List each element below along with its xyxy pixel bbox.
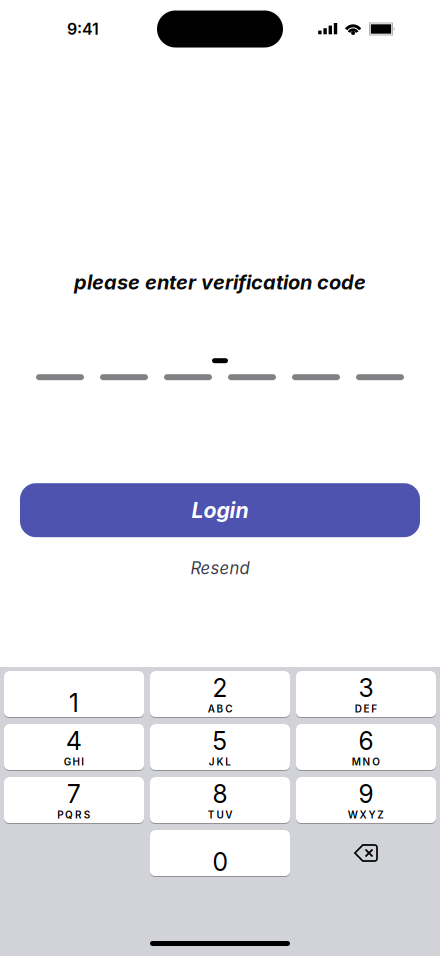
staticText: ABC xyxy=(208,703,232,715)
staticText: 2 xyxy=(212,673,227,703)
staticText: Login xyxy=(191,497,248,523)
staticText: 1 xyxy=(69,688,79,718)
staticText: DEF xyxy=(355,703,377,715)
staticText: JKL xyxy=(209,756,231,768)
staticText: GHI xyxy=(64,756,84,768)
staticText: WXYZ xyxy=(348,809,384,821)
button[interactable]: 5 xyxy=(150,724,290,770)
staticText: 4 xyxy=(66,726,82,756)
staticText: 7 xyxy=(67,779,81,809)
button[interactable]: 8 xyxy=(150,777,290,823)
staticText: TUV xyxy=(208,809,232,821)
button[interactable]: 4 xyxy=(4,724,144,770)
staticText: 9 xyxy=(358,779,373,809)
button[interactable]: 6 xyxy=(296,724,436,770)
button[interactable]: Login xyxy=(20,483,420,537)
button[interactable]: 9 xyxy=(296,777,436,823)
button[interactable]: 0 xyxy=(150,830,290,876)
button[interactable]: Delete xyxy=(296,830,436,876)
button[interactable]: 7 xyxy=(4,777,144,823)
staticText: 5 xyxy=(212,726,227,756)
staticText: MNO xyxy=(352,756,380,768)
button[interactable]: 1 xyxy=(4,671,144,717)
staticText: 9:41 xyxy=(67,19,99,39)
staticText: PQRS xyxy=(57,809,91,821)
staticText: 0 xyxy=(212,847,227,877)
staticText: 8 xyxy=(212,779,227,809)
button[interactable]: 3 xyxy=(296,671,436,717)
staticText: 3 xyxy=(358,673,373,703)
button[interactable]: Resend xyxy=(176,555,263,581)
staticText: 6 xyxy=(358,726,373,756)
button[interactable]: 2 xyxy=(150,671,290,717)
staticText: please enter verification code xyxy=(74,270,366,294)
staticText: Resend xyxy=(190,558,249,578)
